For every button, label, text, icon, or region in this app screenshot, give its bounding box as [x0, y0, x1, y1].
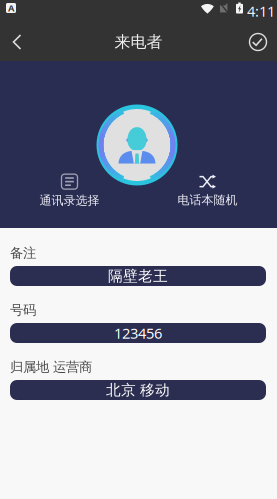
staticText: 来电者 — [114, 32, 162, 52]
staticText: A — [8, 2, 14, 14]
staticText: 隔壁老王 — [108, 267, 168, 285]
staticText: 号码 — [10, 302, 36, 318]
staticText: 4:11 — [247, 1, 275, 21]
button[interactable]: 隔壁老王 — [10, 266, 266, 286]
staticText: 北京 移动 — [106, 381, 170, 399]
button[interactable]: 电话本随机 — [138, 176, 276, 206]
button[interactable]: 通讯录选择 — [0, 176, 138, 206]
button[interactable]: 123456 — [10, 323, 266, 343]
staticText: 123456 — [114, 323, 162, 343]
staticText: 电话本随机 — [177, 193, 237, 207]
staticText: 通讯录选择 — [39, 193, 99, 208]
button[interactable]: 北京 移动 — [10, 380, 266, 400]
button[interactable]: Back — [0, 23, 34, 61]
staticText: 归属地 运营商 — [10, 359, 92, 375]
button[interactable]: Confirm — [239, 23, 277, 61]
staticText: 备注 — [10, 245, 36, 261]
